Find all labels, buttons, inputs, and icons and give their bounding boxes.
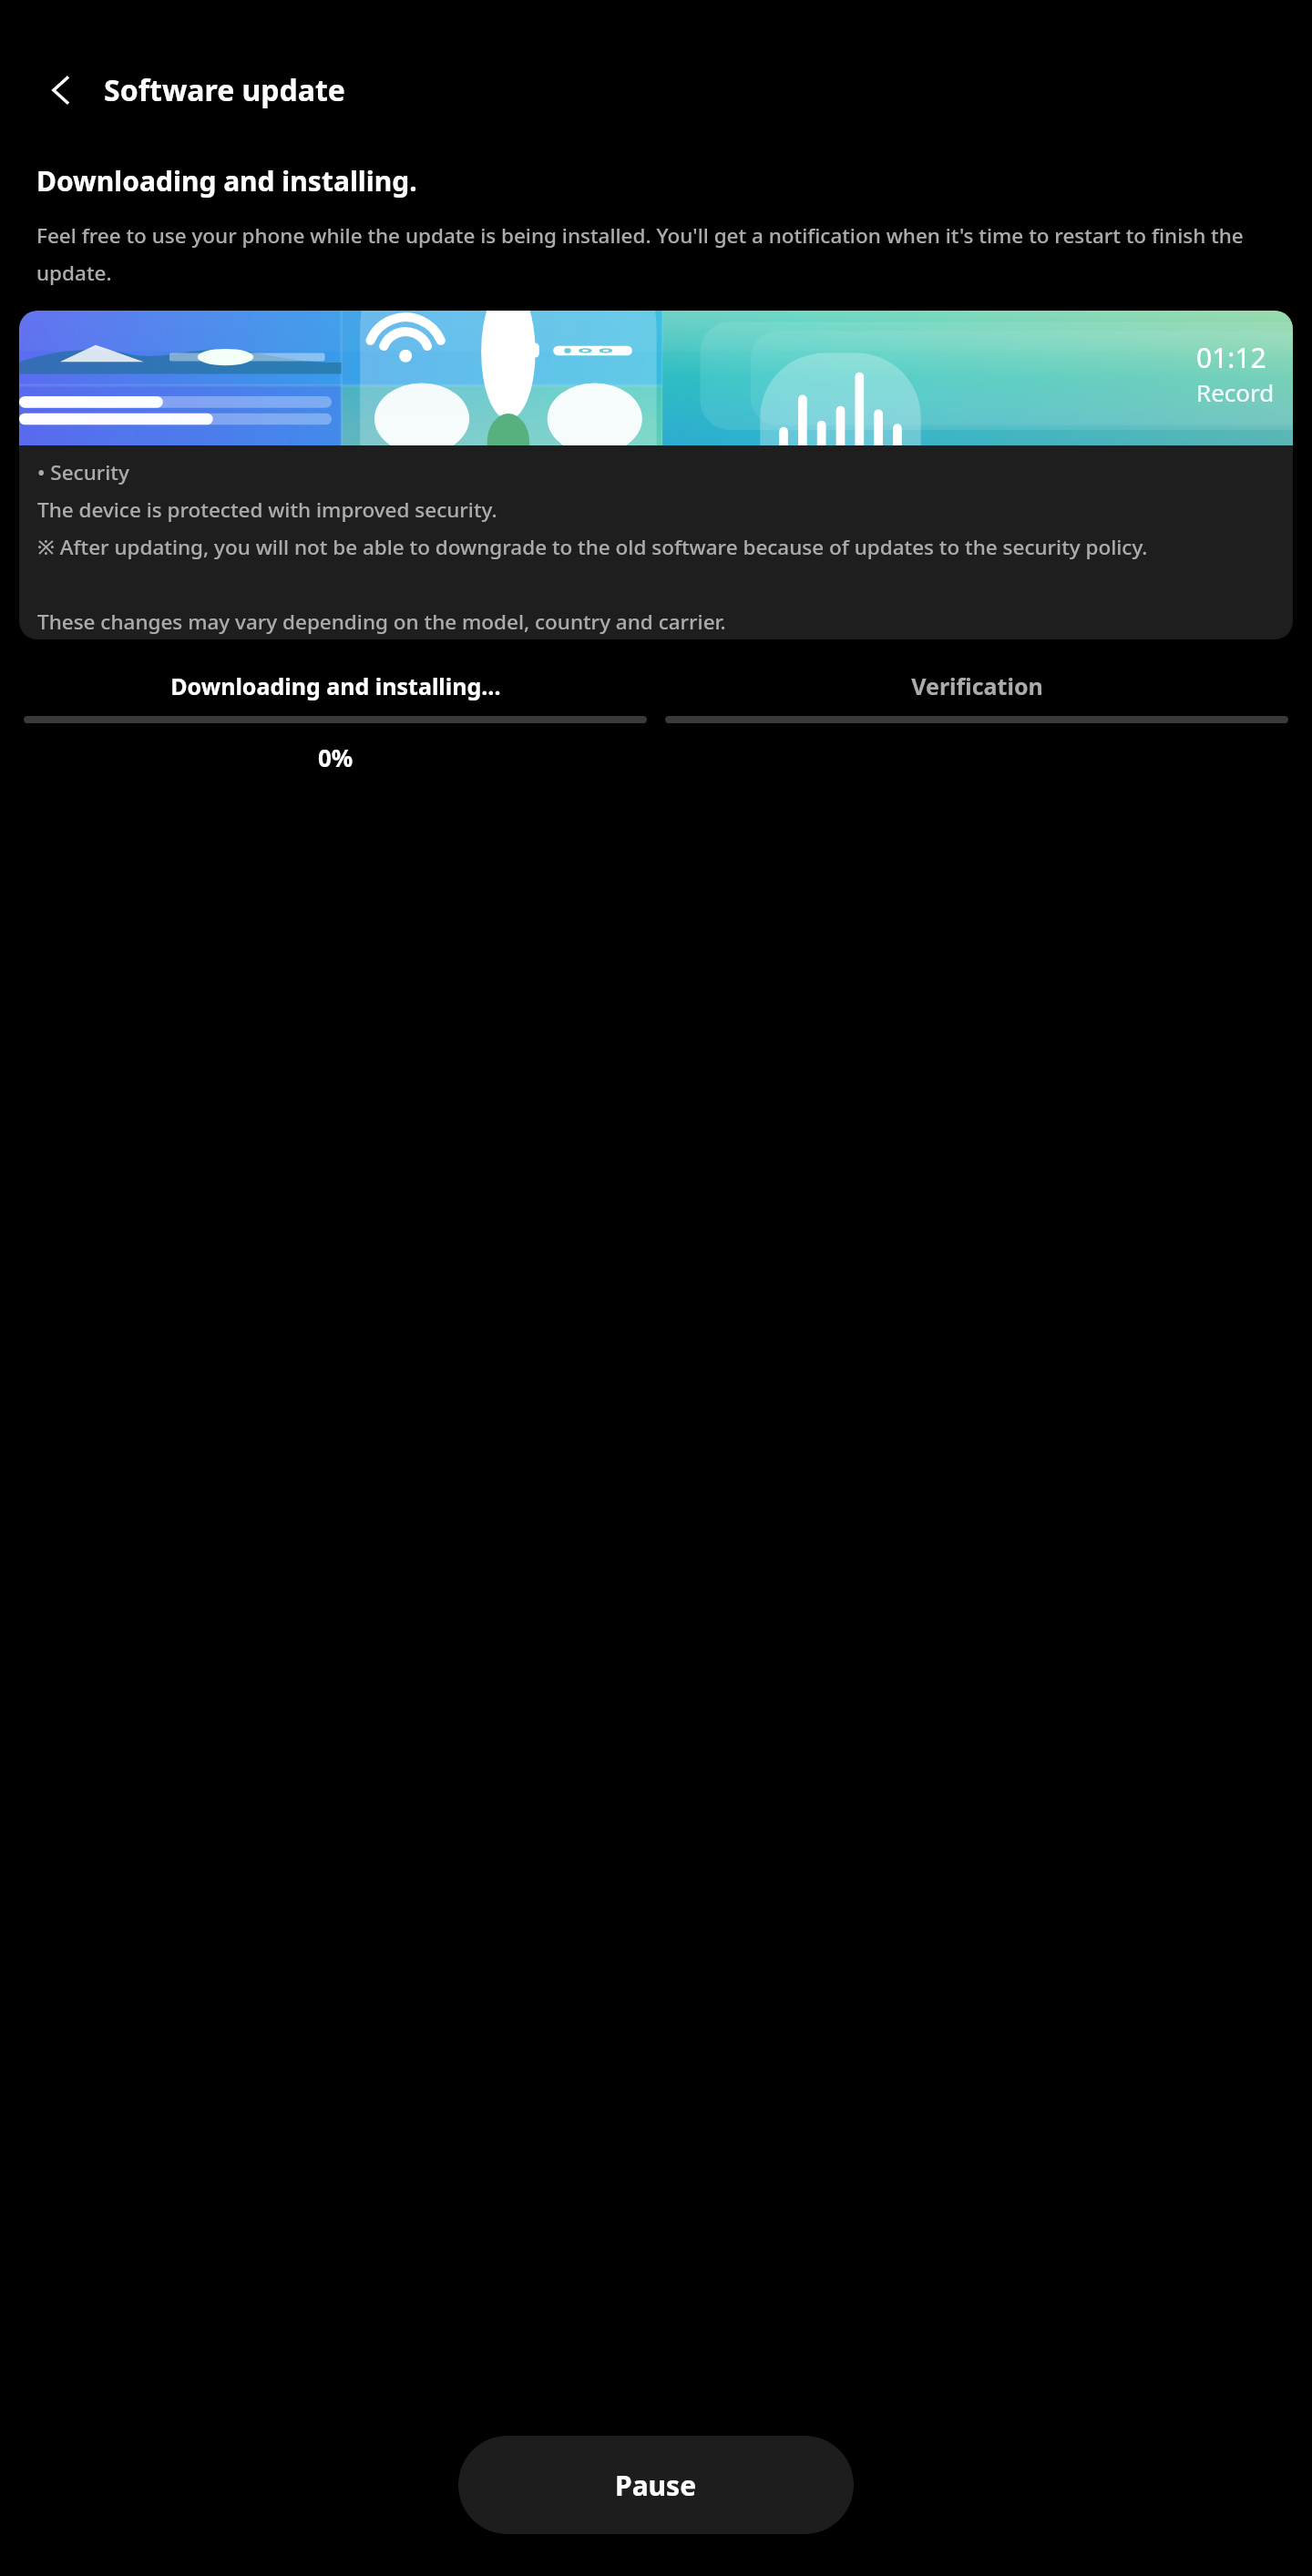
staticText: 0% xyxy=(318,741,354,773)
button[interactable]: Back xyxy=(36,66,86,115)
staticText: • Security The device is protected with … xyxy=(37,458,1148,636)
button[interactable]: Pause xyxy=(458,2436,854,2534)
staticText: Verification xyxy=(911,670,1043,701)
staticText: 01:12 xyxy=(1196,339,1266,376)
staticText: Downloading and installing… xyxy=(170,670,501,701)
staticText: Software update xyxy=(104,70,345,110)
staticText: Record xyxy=(1196,376,1275,408)
staticText: Pause xyxy=(615,2467,697,2504)
staticText: Feel free to use your phone while the up… xyxy=(36,221,1263,287)
staticText: Downloading and installing. xyxy=(36,162,417,199)
